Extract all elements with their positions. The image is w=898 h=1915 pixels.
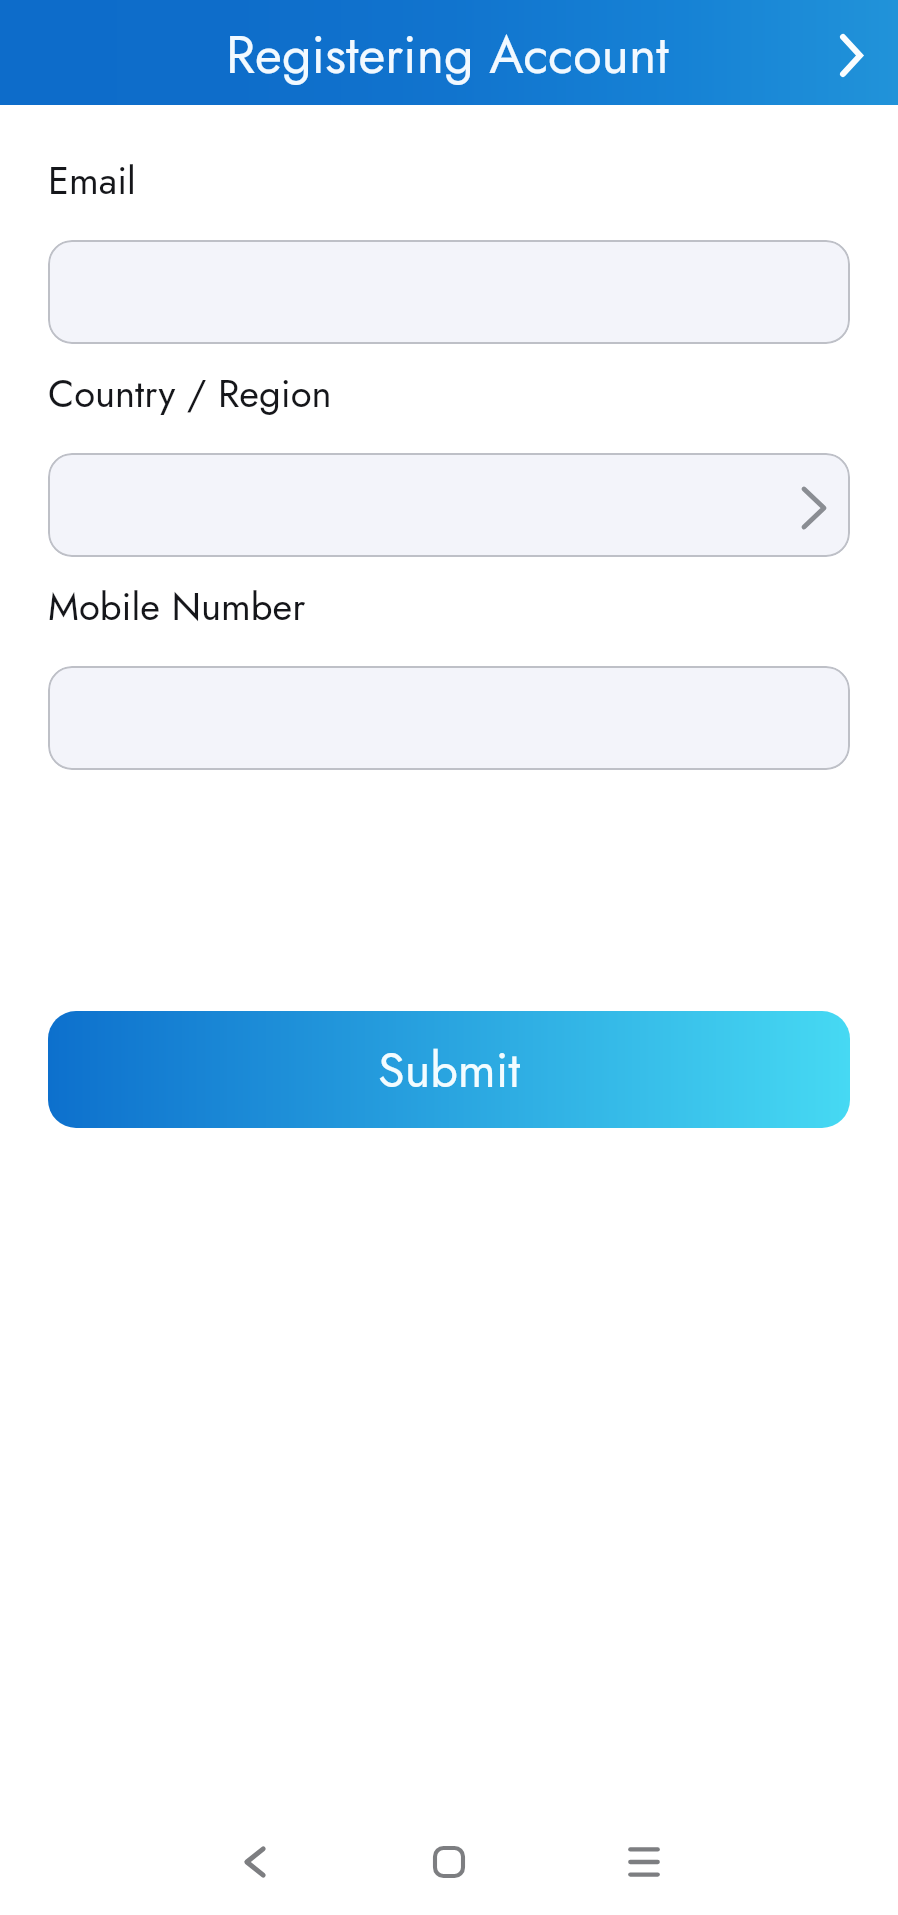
staticText: Email (48, 153, 136, 208)
button[interactable]: Home (409, 1822, 489, 1902)
button[interactable] (48, 240, 850, 344)
button[interactable] (48, 666, 850, 770)
staticText: Submit (378, 1035, 521, 1105)
button[interactable]: Back (215, 1822, 295, 1902)
button[interactable]: Recent apps (604, 1822, 684, 1902)
other: Choose country or region (784, 478, 844, 538)
staticText: Country / Region (48, 366, 332, 421)
staticText: Registering Account (226, 17, 669, 92)
staticText: Mobile Number (48, 579, 306, 634)
button[interactable]: Choose country or region (48, 453, 850, 557)
button[interactable]: Submit (48, 1011, 850, 1128)
button[interactable]: Next (821, 25, 881, 85)
